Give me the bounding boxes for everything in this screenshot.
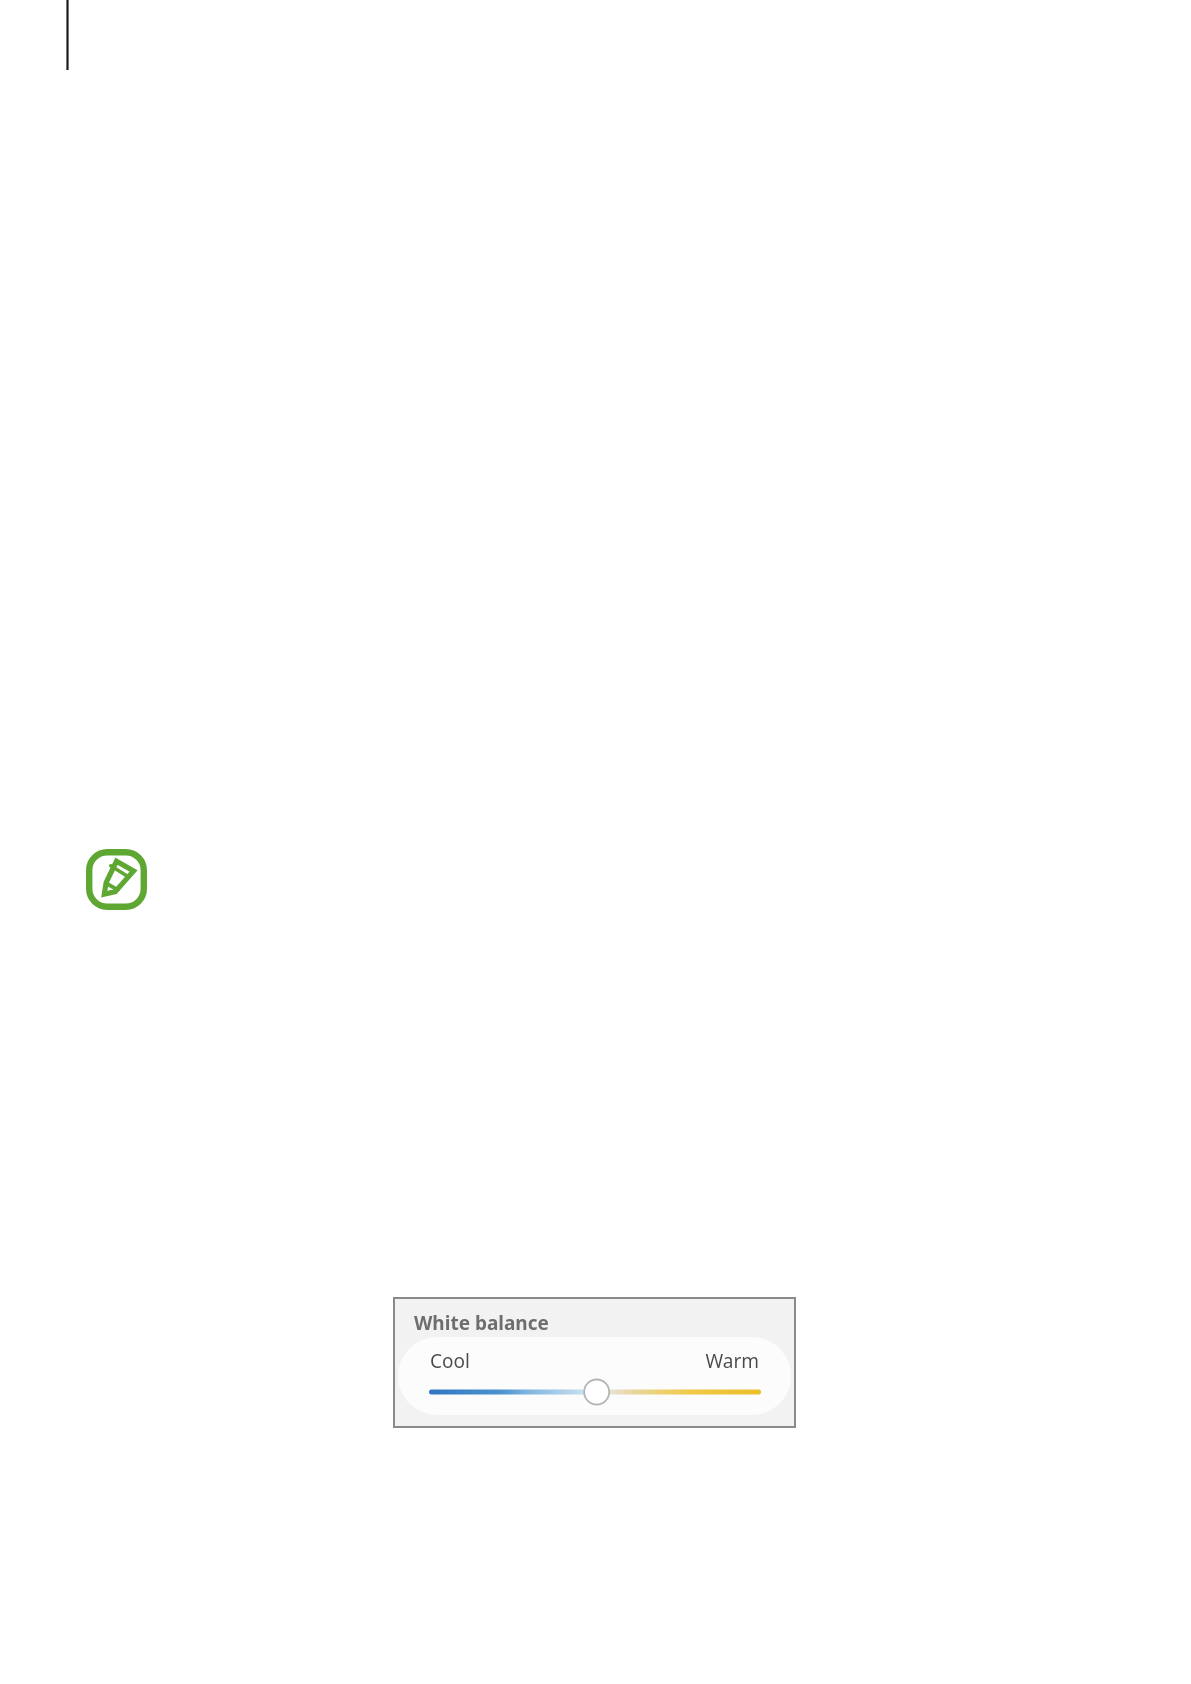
- staticText: Warm: [674, 1348, 759, 1374]
- button[interactable]: White balance: [393, 1297, 796, 1428]
- button[interactable]: Note: [86, 849, 147, 910]
- staticText: White balance: [414, 1310, 549, 1336]
- staticText: Cool: [430, 1348, 470, 1374]
- button[interactable]: White balance slider: [421, 1377, 769, 1407]
